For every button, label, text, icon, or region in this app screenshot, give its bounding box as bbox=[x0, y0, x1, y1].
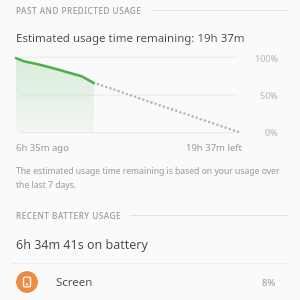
staticText: 50% bbox=[260, 89, 278, 101]
staticText: Estimated usage time remaining: 19h 37m bbox=[16, 30, 245, 46]
staticText: 100% bbox=[255, 52, 278, 64]
button[interactable]: Screen battery usage bbox=[0, 264, 300, 300]
staticText: 19h 37m left bbox=[186, 141, 242, 154]
staticText: 6h 34m 41s on battery bbox=[16, 236, 148, 253]
staticText: 8% bbox=[262, 276, 276, 289]
staticText: RECENT BATTERY USAGE bbox=[16, 210, 121, 221]
staticText: Screen bbox=[56, 274, 93, 290]
other: Screen battery usage bbox=[16, 271, 38, 293]
staticText: The estimated usage time remaining is ba… bbox=[16, 165, 280, 177]
staticText: the last 7 days. bbox=[16, 179, 77, 191]
staticText: PAST AND PREDICTED USAGE bbox=[16, 5, 142, 16]
staticText: 0% bbox=[265, 126, 278, 138]
staticText: 6h 35m ago bbox=[16, 141, 69, 154]
